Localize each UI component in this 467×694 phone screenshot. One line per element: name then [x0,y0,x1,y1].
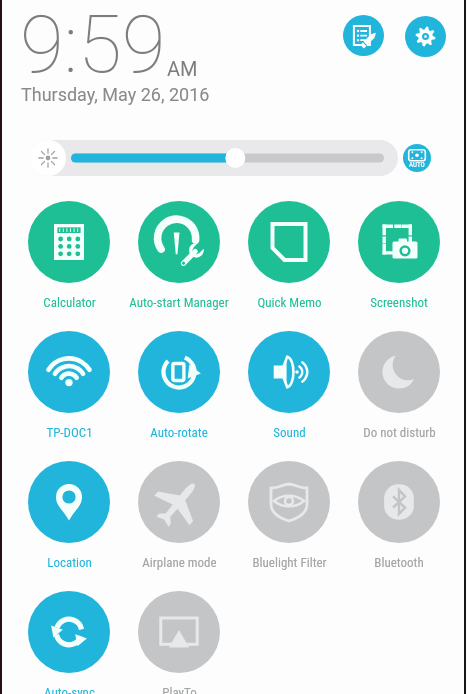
button[interactable]: Sound [234,325,344,443]
button[interactable]: Auto-start Manager [124,195,234,313]
staticText: Do not disturb [363,425,436,440]
button[interactable]: Settings [405,16,446,57]
button[interactable]: Brightness [30,140,66,176]
staticText: PlayTo [162,685,197,694]
staticText: TP-DOC1 [46,425,93,440]
staticText: 9:59 [20,0,166,92]
staticText: AM [167,57,198,80]
button[interactable]: Auto-rotate [124,325,234,443]
staticText: Auto-start Manager [129,295,229,310]
button[interactable]: Airplane mode [124,455,234,573]
button[interactable]: PlayTo [124,585,234,694]
staticText: Bluelight Filter [252,555,327,570]
staticText: Quick Memo [257,295,322,310]
staticText: Screenshot [370,295,428,310]
staticText: Thursday, May 26, 2016 [21,84,210,105]
button[interactable]: Quick Memo [234,195,344,313]
staticText: AUTO [409,161,425,169]
button[interactable]: TP-DOC1 [14,325,124,443]
button[interactable]: Quick note [343,15,384,56]
button[interactable]: Screenshot [344,195,454,313]
staticText: Auto-sync [44,685,95,694]
button[interactable]: Calculator [14,195,124,313]
staticText: Bluetooth [374,555,424,570]
staticText: Airplane mode [142,555,217,570]
staticText: Location [47,555,92,570]
button[interactable]: Bluelight Filter [234,455,344,573]
button[interactable]: Auto-sync [14,585,124,694]
staticText: Sound [273,425,306,440]
staticText: Calculator [43,295,96,310]
staticText: Auto-rotate [150,425,208,440]
button[interactable]: Bluetooth [344,455,454,573]
button[interactable]: Location [14,455,124,573]
button[interactable]: Do not disturb [344,325,454,443]
button[interactable]: Auto brightness [403,144,431,172]
